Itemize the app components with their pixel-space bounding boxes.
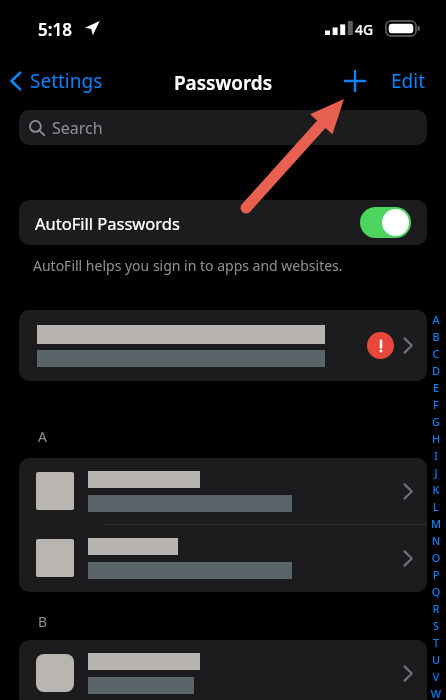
staticText: Settings xyxy=(30,68,103,94)
staticText: I xyxy=(428,448,444,465)
staticText: F xyxy=(428,397,444,414)
staticText: 4G xyxy=(355,20,374,39)
button[interactable] xyxy=(19,525,427,591)
staticText: T xyxy=(428,635,444,652)
staticText: B xyxy=(428,329,444,346)
staticText: R xyxy=(428,601,444,618)
staticText: AutoFill helps you sign in to apps and w… xyxy=(33,256,343,275)
button[interactable] xyxy=(19,310,427,381)
staticText: A xyxy=(428,312,444,329)
staticText: B xyxy=(38,612,48,631)
staticText: Search xyxy=(52,117,103,139)
staticText: L xyxy=(428,499,444,516)
staticText: E xyxy=(428,380,444,397)
staticText: Q xyxy=(428,584,444,601)
staticText: AutoFill Passwords xyxy=(35,212,180,234)
button[interactable]: Add password xyxy=(338,64,372,98)
staticText: J xyxy=(428,465,444,482)
staticText: H xyxy=(428,431,444,448)
staticText: A xyxy=(38,427,47,446)
staticText: P xyxy=(428,567,444,584)
staticText: G xyxy=(428,414,444,431)
staticText: K xyxy=(428,482,444,499)
staticText: U xyxy=(428,652,444,669)
staticText: C xyxy=(428,346,444,363)
staticText: D xyxy=(428,363,444,380)
staticText: M xyxy=(428,516,444,533)
button[interactable] xyxy=(19,458,427,524)
button[interactable]: Settings xyxy=(0,64,111,98)
button[interactable]: Edit xyxy=(384,64,433,98)
staticText: W xyxy=(428,686,444,700)
staticText: V xyxy=(428,669,444,686)
staticText: O xyxy=(428,550,444,567)
button[interactable]: AutoFill Passwords xyxy=(19,200,427,245)
button[interactable]: Search xyxy=(19,110,427,145)
staticText: N xyxy=(428,533,444,550)
button[interactable]: Alphabet index xyxy=(428,312,444,700)
button[interactable]: AutoFill Passwords toggle xyxy=(360,207,411,238)
staticText: Edit xyxy=(391,68,426,94)
staticText: 5:18 xyxy=(38,18,72,41)
button[interactable] xyxy=(19,640,427,700)
staticText: Passwords xyxy=(0,70,446,96)
staticText: S xyxy=(428,618,444,635)
